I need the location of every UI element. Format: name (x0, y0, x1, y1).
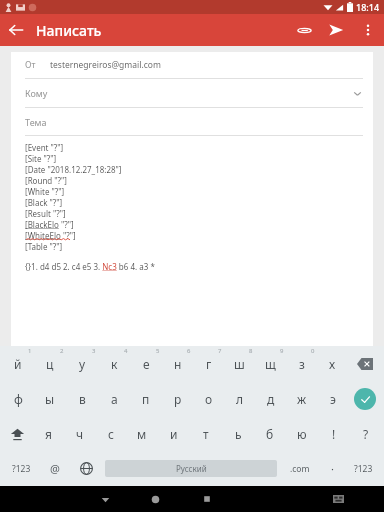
button[interactable]: ?123 (344, 451, 382, 486)
staticText: [Result "?"] (25, 208, 66, 219)
staticText: [White "?"] (25, 186, 65, 197)
button[interactable]: Кому (11, 79, 373, 107)
staticText: 4 (124, 347, 128, 355)
button[interactable]: Русский (105, 460, 277, 477)
button[interactable]: г (193, 346, 224, 381)
button[interactable]: Send (320, 14, 352, 46)
staticText: з (299, 356, 305, 372)
staticText: [Event "?"] (25, 142, 64, 153)
staticText: [BlackElo "?"] (25, 219, 74, 230)
staticText: г (206, 356, 212, 372)
staticText: д (267, 391, 275, 407)
button[interactable]: т (190, 416, 222, 451)
button[interactable]: ч (64, 416, 95, 451)
button[interactable]: а (98, 381, 130, 416)
staticText: а (111, 391, 118, 407)
button[interactable]: .com (280, 451, 320, 486)
staticText: 0 (311, 347, 315, 355)
staticText: 9 (280, 347, 284, 355)
button[interactable]: More options (352, 14, 384, 46)
staticText: л (236, 391, 244, 407)
staticText: 8 (249, 347, 253, 355)
button[interactable]: Back (0, 14, 32, 46)
button[interactable]: о (193, 381, 224, 416)
button[interactable]: Delete (348, 346, 382, 381)
staticText: 7 (218, 347, 222, 355)
button[interactable]: ш (224, 346, 255, 381)
button[interactable]: ? (350, 416, 382, 451)
staticText: х (329, 356, 336, 372)
button[interactable]: Enter (348, 381, 382, 416)
button[interactable]: Attach file (288, 14, 320, 46)
staticText: 6 (187, 347, 191, 355)
button[interactable]: з (286, 346, 317, 381)
staticText: р (174, 391, 182, 407)
staticText: э (330, 391, 336, 407)
button[interactable]: и (158, 416, 190, 451)
button[interactable]: Тема (11, 108, 373, 135)
staticText: 2 (60, 347, 64, 355)
button[interactable]: ж (286, 381, 317, 416)
staticText: е (143, 356, 150, 372)
button[interactable]: [Event "?"] (11, 142, 373, 272)
staticText: .com (290, 463, 310, 475)
button[interactable]: п (130, 381, 162, 416)
staticText: н (174, 356, 182, 372)
button[interactable]: От (11, 52, 373, 78)
staticText: 5 (156, 347, 160, 355)
button[interactable]: б (254, 416, 286, 451)
button[interactable]: щ (255, 346, 286, 381)
staticText: Русский (176, 463, 207, 474)
staticText: Написать (36, 21, 102, 40)
staticText: б (266, 426, 274, 442)
button[interactable]: с (95, 416, 126, 451)
button[interactable]: @ (40, 451, 70, 486)
button[interactable]: у (66, 346, 98, 381)
button[interactable]: · (320, 451, 344, 486)
button[interactable]: к (98, 346, 130, 381)
staticText: 18:14 (356, 1, 380, 13)
button[interactable]: м (126, 416, 158, 451)
button[interactable]: Change language (70, 451, 102, 486)
staticText: ь (235, 426, 242, 442)
staticText: От (25, 59, 36, 71)
button[interactable]: Shift (2, 416, 33, 451)
button[interactable]: д (255, 381, 286, 416)
button[interactable]: Back (80, 486, 130, 512)
button[interactable]: й (2, 346, 34, 381)
staticText: у (79, 356, 86, 372)
button[interactable]: ь (222, 416, 254, 451)
staticText: [Black "?"] (25, 197, 63, 208)
button[interactable]: х (317, 346, 348, 381)
staticText: {}1. d4 d5 2. c4 e5 3. Nc3 b6 4. a3 * (25, 261, 155, 272)
staticText: в (79, 391, 86, 407)
button[interactable]: Recent apps (181, 486, 232, 512)
button[interactable]: ! (318, 416, 350, 451)
staticText: о (205, 391, 213, 407)
staticText: Тема (25, 116, 47, 128)
button[interactable]: ц (34, 346, 66, 381)
button[interactable]: ?123 (2, 451, 40, 486)
button[interactable]: н (162, 346, 193, 381)
button[interactable]: р (162, 381, 193, 416)
staticText: п (142, 391, 150, 407)
button[interactable]: в (66, 381, 98, 416)
staticText: [Table "?"] (25, 241, 63, 252)
button[interactable]: Switch keyboard (313, 486, 364, 512)
staticText: ф (14, 391, 23, 407)
staticText: я (45, 426, 52, 442)
staticText: 3 (92, 347, 96, 355)
staticText: [Date "2018.12.27_18:28"] (25, 164, 122, 175)
button[interactable]: Home (130, 486, 181, 512)
button[interactable]: ю (286, 416, 318, 451)
button[interactable]: е (130, 346, 162, 381)
button[interactable]: э (317, 381, 348, 416)
button[interactable]: ф (2, 381, 34, 416)
button[interactable]: л (224, 381, 255, 416)
staticText: ж (297, 391, 307, 407)
button[interactable]: я (33, 416, 64, 451)
button[interactable]: ы (34, 381, 66, 416)
staticText: ю (297, 426, 307, 442)
staticText: ! (332, 426, 336, 442)
staticText: ?123 (12, 463, 31, 475)
